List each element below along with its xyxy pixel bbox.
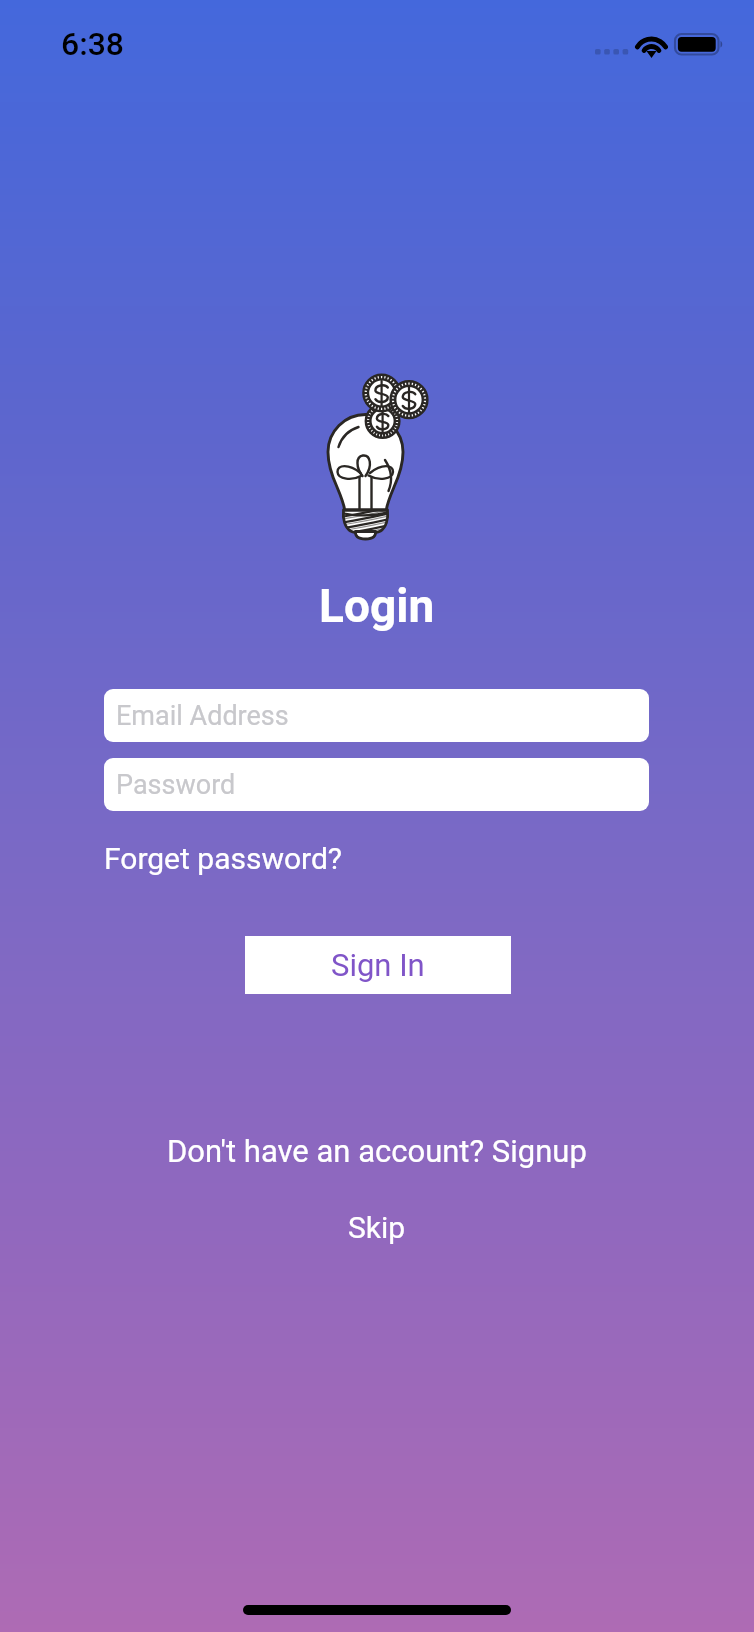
staticText: Sign In — [331, 947, 425, 983]
other: App logo: light bulb with coins — [300, 360, 450, 555]
staticText: 6:38 — [61, 25, 125, 63]
staticText: Forget password? — [104, 841, 343, 876]
button[interactable]: Password — [104, 758, 649, 811]
button[interactable]: Forget password? — [100, 836, 347, 881]
staticText: Email Address — [116, 700, 289, 732]
button[interactable]: Sign In — [245, 936, 511, 994]
staticText: Skip — [348, 1210, 406, 1245]
button[interactable]: Skip — [336, 1205, 418, 1250]
button[interactable]: Email Address — [104, 689, 649, 742]
button[interactable]: Don't have an account? Signup — [161, 1128, 593, 1174]
staticText: Password — [116, 769, 236, 801]
staticText: Don't have an account? Signup — [167, 1133, 587, 1169]
other: Signal, Wi-Fi and battery status — [592, 30, 732, 62]
staticText: Login — [319, 579, 435, 633]
